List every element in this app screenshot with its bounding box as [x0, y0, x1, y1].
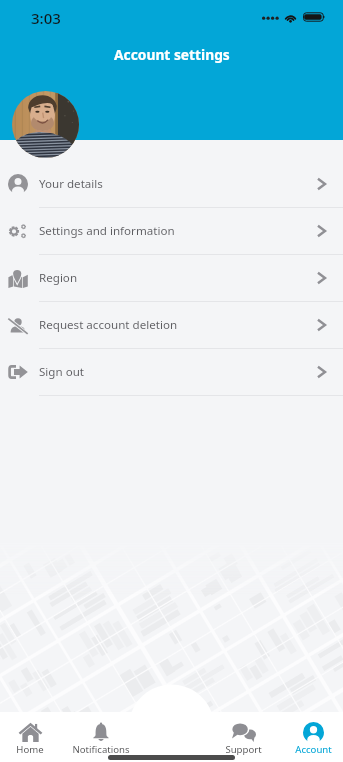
staticText: Account: [295, 743, 332, 756]
button[interactable]: Request account deletion: [0, 302, 343, 349]
button[interactable]: Support: [209, 721, 277, 762]
button[interactable]: Home: [0, 721, 64, 762]
staticText: Your details: [39, 176, 103, 192]
staticText: Region: [39, 270, 78, 286]
staticText: 3:03: [31, 8, 61, 28]
staticText: Home: [16, 743, 44, 756]
staticText: Account settings: [114, 45, 230, 64]
button[interactable]: Notifications: [67, 721, 135, 762]
button[interactable]: Region: [0, 255, 343, 302]
button[interactable]: Account: [279, 721, 343, 762]
button[interactable]: Settings and information: [0, 208, 343, 255]
button[interactable]: Your details: [0, 161, 343, 208]
staticText: Sign out: [39, 364, 85, 380]
staticText: Notifications: [72, 743, 130, 756]
staticText: Request account deletion: [39, 317, 178, 333]
button[interactable]: Profile photo: [12, 91, 79, 158]
button[interactable]: Sign out: [0, 349, 343, 396]
staticText: Support: [225, 743, 262, 756]
staticText: Settings and information: [39, 223, 175, 239]
